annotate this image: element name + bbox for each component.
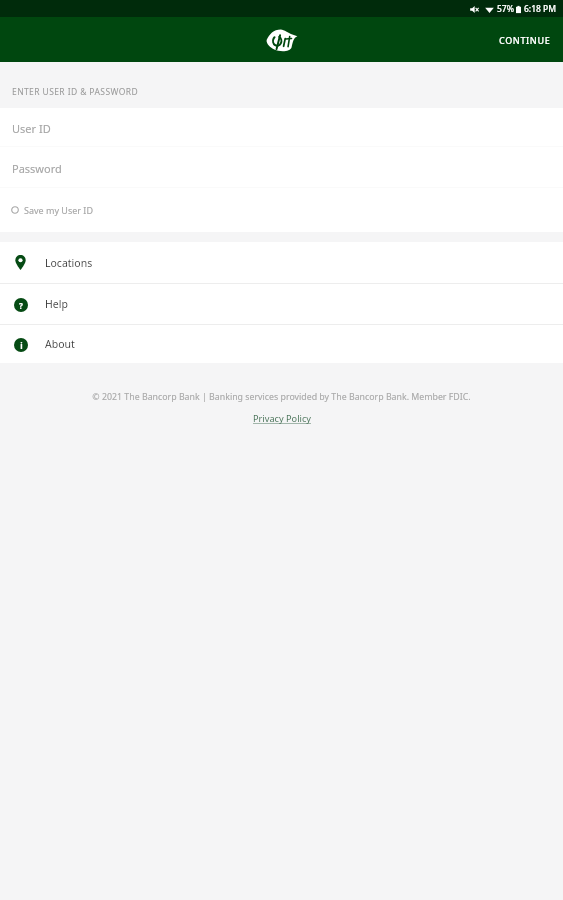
staticText: i (20, 340, 23, 351)
staticText: Save my User ID (24, 204, 93, 216)
other: About (14, 338, 28, 352)
staticText: © 2021 The Bancorp Bank | Banking servic… (92, 391, 471, 403)
button[interactable]: Locations (0, 242, 563, 283)
button[interactable]: Save my User ID (0, 188, 563, 232)
other: Locations (15, 255, 26, 270)
button[interactable]: Password (0, 147, 563, 187)
staticText: CONTINUE (499, 34, 551, 46)
staticText: About (45, 337, 75, 351)
other: Fit logo (266, 28, 298, 52)
staticText: Privacy Policy (253, 412, 311, 425)
staticText: ENTER USER ID & PASSWORD (12, 86, 139, 98)
staticText: 6:18 PM (524, 3, 557, 15)
button[interactable]: CONTINUE (487, 22, 563, 58)
staticText: Help (45, 297, 68, 311)
other: Help (14, 298, 28, 312)
button[interactable]: About (0, 325, 563, 363)
button[interactable]: Privacy Policy (253, 412, 311, 425)
staticText: User ID (12, 121, 51, 136)
staticText: Password (12, 161, 62, 176)
staticText: 57% (497, 3, 514, 15)
button[interactable]: Help (0, 284, 563, 324)
button[interactable]: User ID (0, 108, 563, 146)
staticText: Locations (45, 256, 93, 270)
staticText: ? (19, 300, 23, 311)
